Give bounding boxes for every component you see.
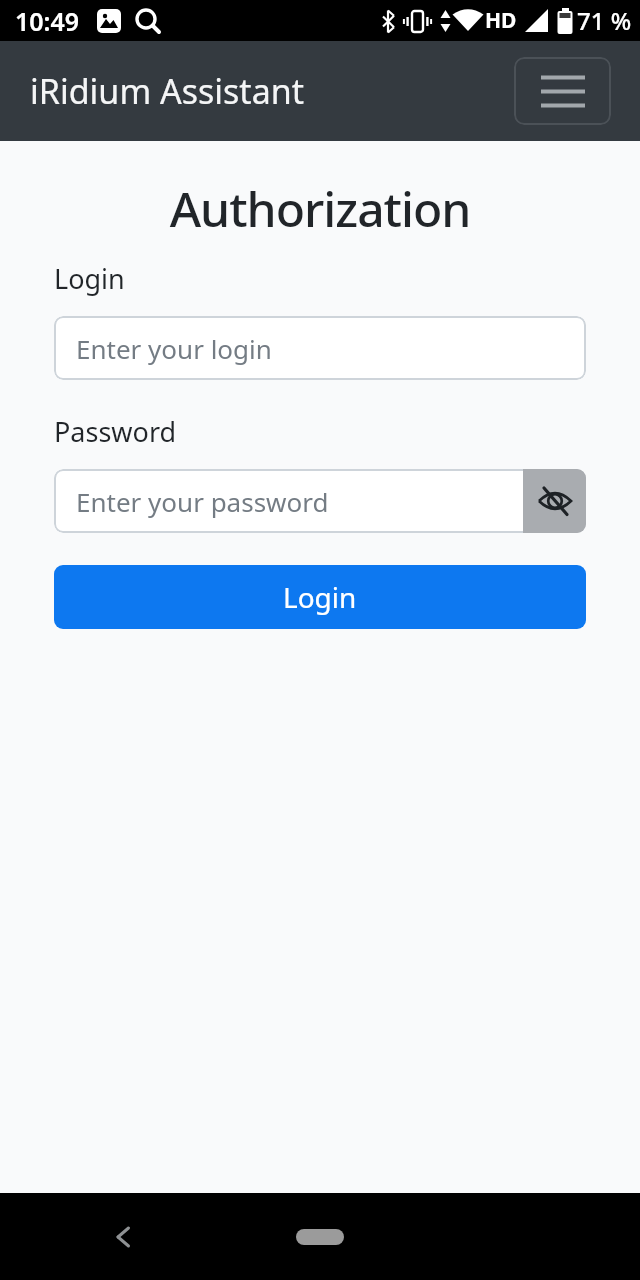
staticText: Password [54,413,177,450]
staticText: Authorization [54,176,586,241]
button[interactable] [296,1229,344,1245]
staticText: Enter your login [76,331,272,366]
staticText: HD [485,6,517,35]
staticText: 71 % [577,4,632,37]
button[interactable] [95,1209,151,1265]
button[interactable] [514,57,611,125]
staticText: Enter your password [76,484,329,519]
button[interactable]: Enter your password [54,469,586,533]
button[interactable] [523,469,586,533]
button[interactable]: Login [54,565,586,629]
staticText: iRidium Assistant [30,68,305,114]
button[interactable]: Enter your login [54,316,586,380]
staticText: 10:49 [15,4,80,38]
staticText: Login [283,578,357,616]
staticText: Login [54,260,125,297]
